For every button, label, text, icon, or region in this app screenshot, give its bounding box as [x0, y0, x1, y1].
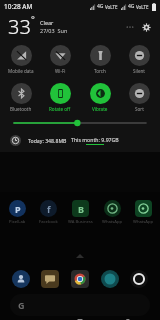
button[interactable]: Chrome	[71, 270, 89, 288]
staticText: 4G	[128, 3, 135, 10]
staticText: Mobile data	[8, 68, 34, 74]
staticText: Vibrate	[92, 106, 108, 112]
button[interactable]: P	[2, 200, 32, 225]
button[interactable]: Silent	[120, 44, 158, 75]
staticText: Wi-Fi	[55, 68, 66, 74]
button[interactable]: Wi-Fi	[41, 44, 79, 75]
button[interactable]: Photos	[101, 270, 119, 288]
button[interactable]: Sort	[120, 82, 158, 113]
staticText: °	[31, 13, 35, 25]
staticText: VoLTE	[136, 4, 149, 10]
staticText: PixelLab	[9, 219, 26, 225]
button[interactable]: Camera	[130, 270, 148, 288]
staticText: 33	[8, 13, 31, 40]
button[interactable]: More options	[123, 20, 137, 34]
staticText: Facebook	[39, 219, 58, 225]
staticText: This month: 9.97GB	[71, 136, 119, 143]
staticText: 27/03 Sun	[40, 27, 68, 34]
button[interactable]: Messages	[41, 270, 59, 288]
button[interactable]: WhatsApp	[128, 200, 158, 225]
button[interactable]: WhatsApp	[97, 200, 127, 225]
button[interactable]: Torch	[81, 44, 119, 75]
staticText: Rotate off	[49, 106, 71, 112]
staticText: Silent	[133, 68, 145, 74]
staticText: WhatsApp	[133, 219, 154, 225]
staticText: Today: 348.8MB	[28, 137, 67, 144]
staticText: G	[18, 299, 25, 311]
staticText: WA Business	[68, 219, 93, 225]
staticText: WhatsApp	[102, 219, 123, 225]
button[interactable]: Today: 348.8MB	[10, 132, 150, 148]
staticText: 4G	[97, 3, 104, 10]
staticText: 10:28 AM	[4, 2, 33, 11]
button[interactable]: Brightness	[14, 117, 146, 129]
staticText: Sort	[135, 106, 144, 112]
button[interactable]: Vibrate	[81, 82, 119, 113]
button[interactable]: Google Search	[10, 294, 150, 316]
staticText: B	[78, 203, 84, 215]
staticText: Bluetooth	[10, 106, 32, 112]
staticText: Clear	[40, 19, 54, 26]
button[interactable]: B	[65, 200, 95, 225]
button[interactable]: Settings	[139, 20, 153, 34]
staticText: f	[47, 203, 51, 215]
staticText: VoLTE	[105, 4, 118, 10]
button[interactable]: Bluetooth	[2, 82, 40, 113]
button[interactable]: Contacts	[12, 270, 30, 288]
button[interactable]: f	[33, 200, 63, 225]
button[interactable]: Mobile data	[2, 44, 40, 75]
staticText: P	[15, 203, 21, 215]
staticText: Torch	[94, 68, 106, 74]
button[interactable]: Rotate off	[41, 82, 79, 113]
